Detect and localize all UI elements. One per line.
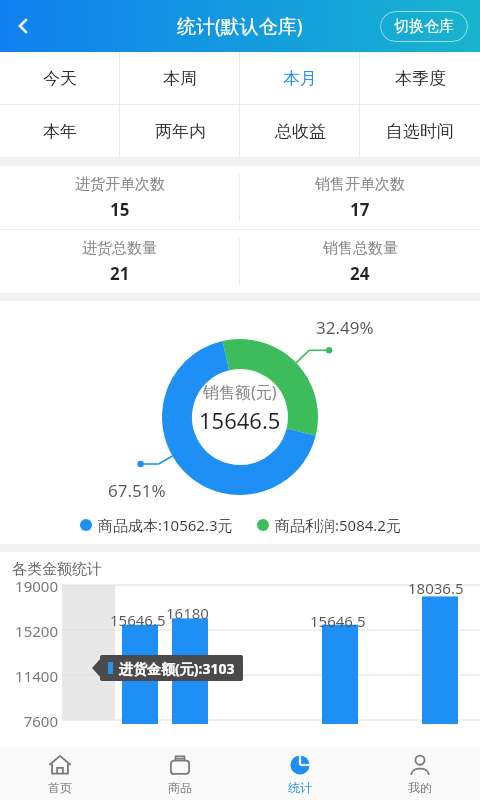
staticText: 15646.5 xyxy=(110,610,166,630)
button[interactable]: Back xyxy=(0,3,46,49)
button[interactable]: 商品成本:10562.3元 xyxy=(80,515,233,535)
button[interactable]: 进货开单次数 xyxy=(0,166,239,229)
staticText: 本月 xyxy=(283,68,317,89)
staticText: 本季度 xyxy=(395,68,446,89)
button[interactable]: 自选时间 xyxy=(360,105,480,157)
staticText: 我的 xyxy=(408,780,432,795)
staticText: 17 xyxy=(350,198,370,221)
staticText: 67.51% xyxy=(108,479,166,502)
staticText: 进货金额(元):3103 xyxy=(119,659,235,678)
button[interactable]: 销售总数量 xyxy=(240,230,480,293)
staticText: 今天 xyxy=(43,68,77,89)
staticText: 21 xyxy=(110,262,130,285)
staticText: 统计 xyxy=(288,780,312,795)
staticText: 本周 xyxy=(163,68,197,89)
button[interactable]: 商品 xyxy=(120,747,240,800)
staticText: 自选时间 xyxy=(386,121,454,142)
staticText: 11400 xyxy=(10,666,58,686)
staticText: 各类金额统计 xyxy=(12,560,102,579)
button[interactable]: 总收益 xyxy=(240,105,360,157)
staticText: 进货总数量 xyxy=(82,239,157,258)
button[interactable]: 切换仓库 xyxy=(380,11,468,42)
button[interactable]: 本周 xyxy=(120,52,240,104)
staticText: 销售总数量 xyxy=(323,239,398,258)
staticText: 本年 xyxy=(43,121,77,142)
button[interactable]: 销售开单次数 xyxy=(240,166,480,229)
staticText: 商品利润:5084.2元 xyxy=(275,515,401,535)
staticText: 19000 xyxy=(10,576,58,596)
staticText: 15200 xyxy=(10,621,58,641)
button[interactable]: 统计 xyxy=(240,747,360,800)
staticText: 销售开单次数 xyxy=(315,175,405,194)
button[interactable]: 商品利润:5084.2元 xyxy=(257,515,401,535)
staticText: 两年内 xyxy=(155,121,206,142)
button[interactable]: 两年内 xyxy=(120,105,240,157)
button[interactable]: 本季度 xyxy=(360,52,480,104)
staticText: 7600 xyxy=(10,711,58,731)
staticText: 首页 xyxy=(48,780,72,795)
staticText: 18036.5 xyxy=(408,578,464,598)
staticText: 商品成本:10562.3元 xyxy=(98,515,233,535)
staticText: 15646.5 xyxy=(310,611,366,631)
button[interactable]: 今天 xyxy=(0,52,120,104)
staticText: 32.49% xyxy=(316,316,374,339)
staticText: 24 xyxy=(350,262,370,285)
staticText: 统计(默认仓库) xyxy=(177,13,303,39)
staticText: 总收益 xyxy=(275,121,326,142)
staticText: 商品 xyxy=(168,780,192,795)
staticText: 15646.5 xyxy=(199,405,281,435)
staticText: 进货开单次数 xyxy=(75,175,165,194)
button[interactable]: 本月 xyxy=(240,52,360,104)
button[interactable]: 本年 xyxy=(0,105,120,157)
button[interactable]: 我的 xyxy=(360,747,480,800)
staticText: 销售额(元) xyxy=(203,381,277,403)
button[interactable]: 首页 xyxy=(0,747,120,800)
staticText: 15 xyxy=(110,198,130,221)
staticText: 16180 xyxy=(166,603,209,623)
staticText: 切换仓库 xyxy=(394,17,454,36)
button[interactable]: 进货总数量 xyxy=(0,230,239,293)
